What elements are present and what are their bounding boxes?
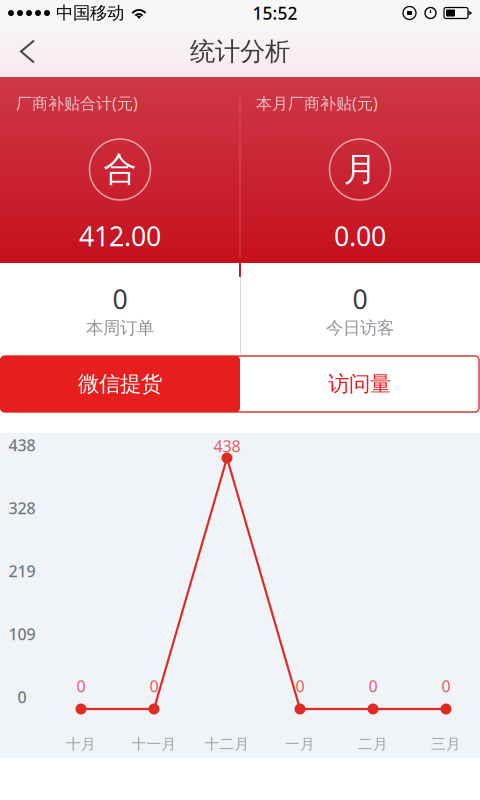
staticText: 厂商补贴合计(元) (16, 92, 138, 114)
staticText: 0 (368, 675, 377, 697)
staticText: 438 (213, 435, 240, 457)
staticText: 0 (352, 281, 367, 317)
staticText: 本月厂商补贴(元) (256, 92, 378, 114)
staticText: 月 (343, 149, 376, 190)
staticText: 0 (112, 281, 127, 317)
staticText: 438 (8, 434, 35, 456)
staticText: 0 (17, 686, 26, 708)
staticText: 二月 (358, 735, 388, 753)
button[interactable]: 0 (240, 263, 480, 354)
staticText: 109 (8, 623, 35, 645)
button[interactable]: 访问量 (240, 356, 479, 412)
staticText: 合 (103, 149, 136, 190)
staticText: 统计分析 (190, 36, 290, 67)
staticText: 十月 (66, 735, 96, 753)
button[interactable]: Back (0, 26, 52, 76)
button[interactable]: 微信提货 (0, 356, 240, 412)
staticText: 本周订单 (86, 317, 154, 339)
staticText: 0 (76, 675, 85, 697)
button[interactable]: 0 (0, 263, 240, 354)
staticText: 微信提货 (78, 371, 162, 397)
staticText: 412.00 (79, 218, 161, 254)
staticText: 0.00 (334, 218, 386, 254)
staticText: 十二月 (204, 735, 249, 753)
staticText: 中国移动 (56, 2, 124, 24)
staticText: 三月 (431, 735, 461, 753)
staticText: 219 (8, 560, 35, 582)
staticText: 15:52 (252, 1, 297, 24)
staticText: 一月 (285, 735, 315, 753)
staticText: 今日访客 (326, 317, 394, 339)
staticText: 328 (8, 497, 35, 519)
staticText: 0 (295, 675, 304, 697)
staticText: 十一月 (131, 735, 176, 753)
staticText: 0 (149, 675, 158, 697)
staticText: 访问量 (328, 371, 391, 397)
staticText: 0 (441, 675, 450, 697)
